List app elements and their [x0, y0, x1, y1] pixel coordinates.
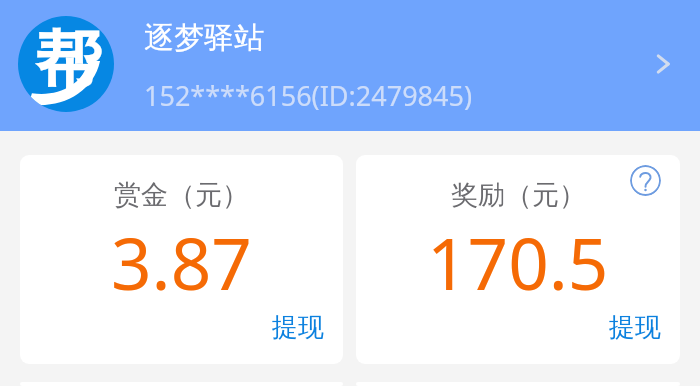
staticText: 逐梦驿站	[144, 19, 264, 57]
staticText: 3.87	[111, 214, 252, 311]
staticText: 赏金（元）	[114, 178, 249, 212]
button[interactable]: 提现	[609, 311, 661, 344]
staticText: 提现	[272, 311, 324, 344]
button[interactable]: 赏金（元）	[20, 155, 343, 364]
staticText: 提现	[609, 311, 661, 344]
button[interactable]: Profile details	[646, 47, 680, 81]
staticText: 152****6156(ID:2479845)	[144, 77, 473, 114]
button[interactable]: 奖励（元）	[356, 155, 680, 364]
staticText: 奖励（元）	[451, 178, 586, 212]
button[interactable]: Help	[630, 165, 661, 196]
staticText: 170.5	[427, 214, 609, 311]
staticText: 帮	[35, 20, 102, 104]
button[interactable]: 帮	[0, 0, 700, 131]
button[interactable]: 提现	[272, 311, 324, 344]
